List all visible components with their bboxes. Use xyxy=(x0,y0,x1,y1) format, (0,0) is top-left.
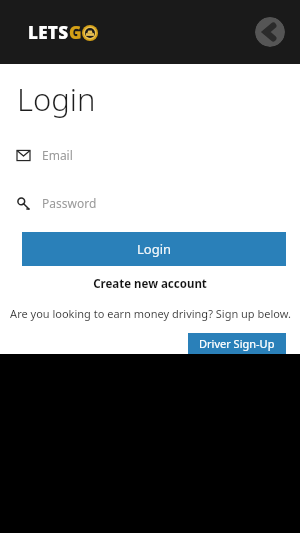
staticText: Email xyxy=(42,147,73,163)
staticText: LETS xyxy=(28,21,69,44)
staticText: Create new account xyxy=(93,276,207,292)
staticText: Are you looking to earn money driving? S… xyxy=(10,306,291,321)
button[interactable]: Password xyxy=(0,190,300,216)
staticText: G xyxy=(69,21,82,44)
staticText: Login xyxy=(17,78,96,120)
staticText: Login xyxy=(137,240,172,258)
staticText: Password xyxy=(42,195,97,211)
button[interactable]: Driver Sign-Up xyxy=(188,333,286,354)
button[interactable]: Create new account xyxy=(0,276,300,292)
button[interactable]: Back xyxy=(255,17,285,47)
button[interactable]: Login xyxy=(22,232,286,266)
staticText: Driver Sign-Up xyxy=(199,336,275,351)
button[interactable]: Email xyxy=(0,142,300,168)
